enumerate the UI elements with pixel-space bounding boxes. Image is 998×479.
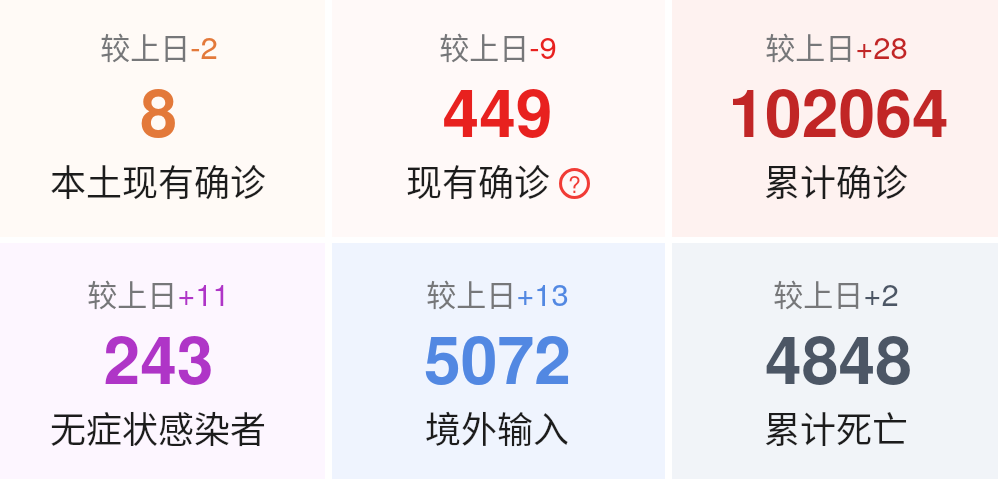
staticText: 较上日-2 bbox=[100, 23, 218, 67]
staticText: 5072 bbox=[424, 310, 571, 405]
button[interactable]: 现有确诊 449 bbox=[332, 0, 665, 237]
button[interactable]: What counts as a current confirmed case bbox=[559, 168, 590, 199]
staticText: 8 bbox=[140, 63, 177, 158]
staticText: 较上日+11 bbox=[87, 270, 230, 314]
staticText: 现有确诊 bbox=[406, 154, 551, 206]
staticText: 累计确诊 bbox=[764, 154, 909, 206]
button[interactable]: 累计死亡 4848 bbox=[672, 243, 998, 479]
button[interactable]: 本土现有确诊 8 bbox=[0, 0, 325, 237]
button[interactable]: 无症状感染者 243 bbox=[0, 243, 325, 479]
staticText: 境外输入 bbox=[425, 401, 570, 453]
staticText: 较上日+13 bbox=[426, 270, 569, 314]
staticText: 较上日+28 bbox=[765, 23, 908, 67]
staticText: 102064 bbox=[728, 63, 949, 158]
staticText: ? bbox=[568, 167, 581, 198]
button[interactable]: 累计确诊 102064 bbox=[672, 0, 998, 237]
staticText: 无症状感染者 bbox=[50, 401, 267, 453]
staticText: 243 bbox=[103, 310, 214, 405]
button[interactable]: 境外输入 5072 bbox=[332, 243, 665, 479]
staticText: 4848 bbox=[765, 310, 912, 405]
staticText: 本土现有确诊 bbox=[50, 154, 267, 206]
staticText: 较上日-9 bbox=[439, 23, 557, 67]
staticText: 449 bbox=[442, 63, 553, 158]
staticText: 累计死亡 bbox=[764, 401, 909, 453]
staticText: 较上日+2 bbox=[773, 270, 899, 314]
